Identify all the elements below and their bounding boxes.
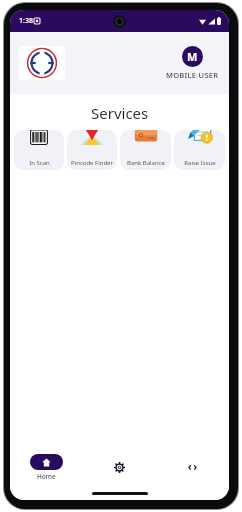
button[interactable]: Developer bbox=[156, 448, 229, 486]
button[interactable]: M bbox=[166, 46, 219, 80]
button[interactable]: Raise Issue bbox=[174, 130, 225, 170]
staticText: Home bbox=[37, 472, 56, 481]
staticText: MOBILE USER bbox=[166, 70, 219, 80]
staticText: In Scan bbox=[29, 159, 50, 167]
button[interactable]: Settings bbox=[83, 448, 156, 486]
button[interactable]: Home bbox=[10, 454, 83, 481]
button[interactable]: Pincode Finder bbox=[67, 130, 117, 170]
staticText: M bbox=[187, 49, 198, 64]
button[interactable]: Bank Balance bbox=[120, 130, 171, 170]
staticText: Bank Balance bbox=[127, 159, 165, 167]
staticText: Pincode Finder bbox=[71, 159, 113, 167]
button[interactable]: ELS logo bbox=[19, 46, 65, 80]
staticText: 1:38 bbox=[19, 16, 33, 26]
staticText: Services bbox=[91, 103, 149, 123]
staticText: Raise Issue bbox=[184, 159, 216, 167]
button[interactable]: In Scan bbox=[14, 130, 64, 170]
